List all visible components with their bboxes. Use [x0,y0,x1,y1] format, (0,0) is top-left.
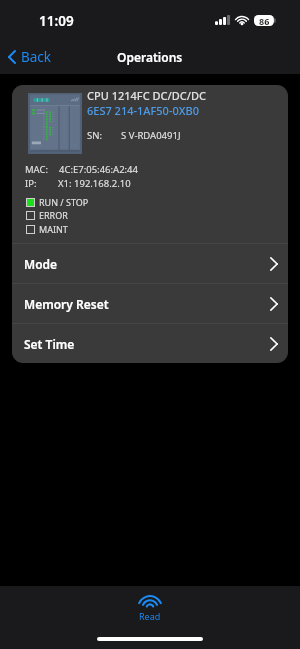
staticText: ERROR [39,209,68,221]
staticText: MAC: [25,163,49,176]
button[interactable]: Set Time [12,324,288,363]
button[interactable]: 6ES7 214-1AF50-0XB0 [87,103,199,118]
staticText: 86 [259,15,270,26]
staticText: RUN / STOP [39,196,89,208]
staticText: Mode [24,256,58,272]
staticText: Set Time [24,336,75,352]
staticText: 4C:E7:05:46:A2:44 [59,163,138,176]
staticText: 11:09 [39,12,74,30]
button[interactable]: Back [0,44,58,70]
staticText: Back [21,48,52,66]
button[interactable]: Read [0,596,300,622]
staticText: SN: [87,129,102,142]
staticText: Read [139,610,161,622]
button[interactable]: Mode [12,244,288,283]
button[interactable]: Memory Reset [12,284,288,323]
staticText: Operations [117,49,183,65]
staticText: S V-RDA0491J [121,129,181,142]
staticText: MAINT [39,223,68,235]
staticText: Memory Reset [24,296,109,312]
other: Read [138,596,162,608]
staticText: CPU 1214FC DC/DC/DC [87,88,207,103]
staticText: X1: 192.168.2.10 [58,177,131,190]
staticText: IP: [25,177,37,190]
